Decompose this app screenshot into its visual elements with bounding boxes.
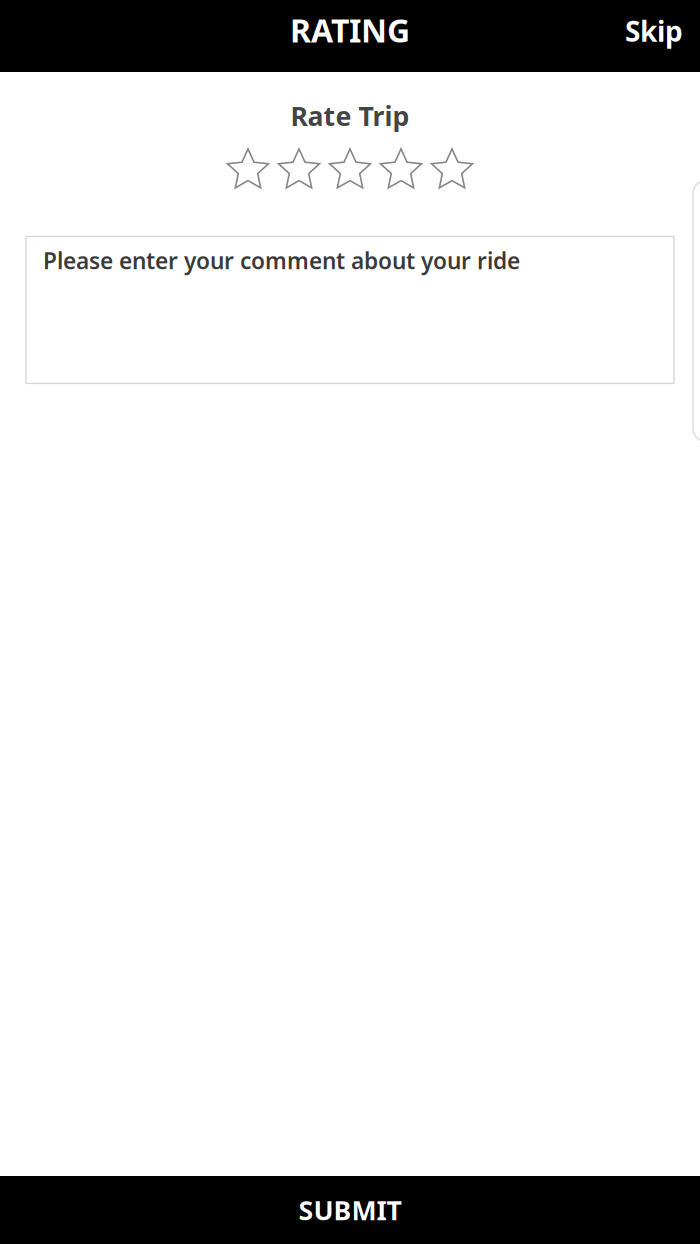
- staticText: Rate Trip: [290, 98, 409, 133]
- button[interactable]: Rate 1 star: [226, 148, 270, 191]
- button[interactable]: SUBMIT: [0, 1176, 700, 1244]
- staticText: Skip: [625, 12, 683, 50]
- button[interactable]: Rate 5 stars: [430, 148, 474, 191]
- staticText: Please enter your comment about your rid…: [43, 245, 520, 275]
- button[interactable]: Skip: [608, 0, 700, 72]
- button[interactable]: Please enter your comment about your rid…: [26, 236, 674, 383]
- button[interactable]: Rate 3 stars: [328, 148, 372, 191]
- staticText: RATING: [290, 9, 410, 51]
- button[interactable]: Rate 2 stars: [277, 148, 321, 191]
- staticText: SUBMIT: [298, 1192, 401, 1228]
- button[interactable]: Rate 4 stars: [379, 148, 423, 191]
